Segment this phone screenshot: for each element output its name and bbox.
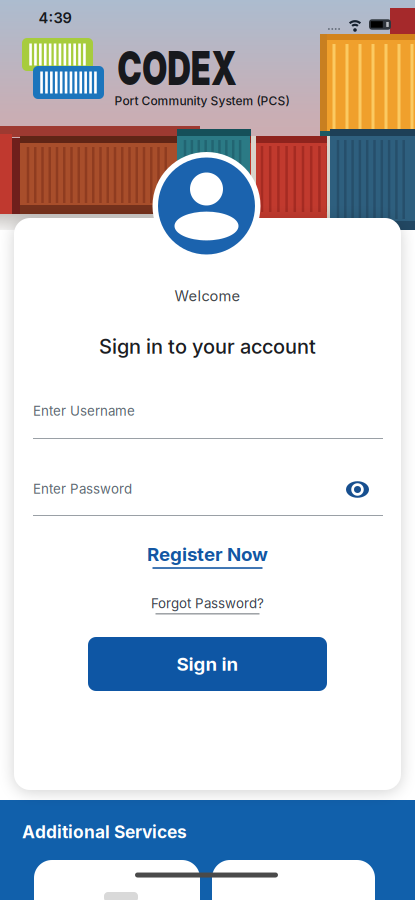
button[interactable]: Additional service 2 — [212, 860, 375, 900]
staticText: Register Now — [147, 543, 268, 565]
staticText: Sign in to your account — [99, 335, 316, 358]
staticText: Welcome — [174, 287, 240, 305]
staticText: Sign in — [176, 653, 238, 675]
button[interactable]: Sign in — [88, 637, 327, 691]
staticText: 4:39 — [38, 9, 71, 27]
button[interactable]: Enter Username — [33, 396, 383, 442]
staticText: Enter Username — [33, 403, 135, 419]
button[interactable]: Show password — [346, 481, 369, 498]
staticText: Forgot Password? — [151, 596, 264, 611]
staticText: CODEX — [70, 33, 283, 103]
button[interactable]: Additional service 1 — [34, 860, 200, 900]
button[interactable]: Forgot Password? — [151, 596, 264, 614]
staticText: Additional Services — [22, 822, 187, 842]
button[interactable]: Enter Password — [33, 474, 383, 520]
button[interactable]: Register Now — [147, 543, 268, 569]
staticText: Port Community System (PCS) — [114, 94, 289, 108]
staticText: Enter Password — [33, 481, 132, 497]
